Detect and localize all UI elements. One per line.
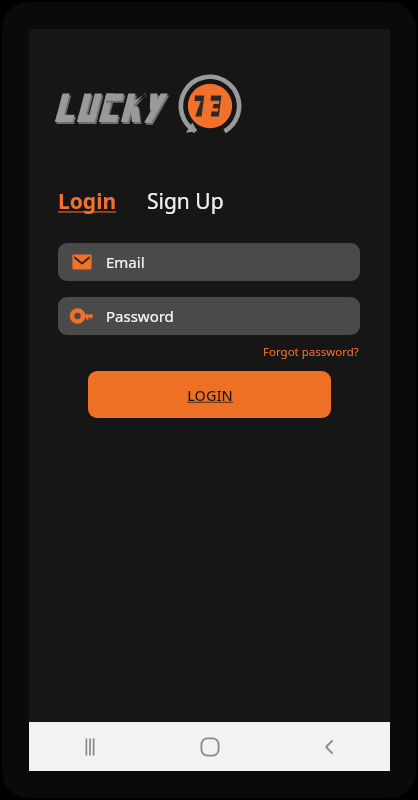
button[interactable]: Email: [58, 243, 360, 281]
button[interactable]: Login: [58, 185, 117, 218]
button[interactable]: Password: [58, 297, 360, 335]
staticText: Sign Up: [147, 187, 224, 216]
button[interactable]: Back: [270, 722, 390, 771]
staticText: Forgot password?: [263, 344, 359, 360]
button[interactable]: Forgot password?: [262, 342, 360, 362]
button[interactable]: Recent apps: [29, 722, 150, 771]
button[interactable]: Sign Up: [147, 185, 224, 218]
staticText: Password: [106, 306, 174, 326]
staticText: Email: [106, 252, 145, 272]
button[interactable]: Home: [150, 722, 270, 771]
staticText: LOGIN: [187, 385, 233, 405]
staticText: Login: [58, 187, 117, 216]
button[interactable]: LOGIN: [88, 371, 331, 418]
